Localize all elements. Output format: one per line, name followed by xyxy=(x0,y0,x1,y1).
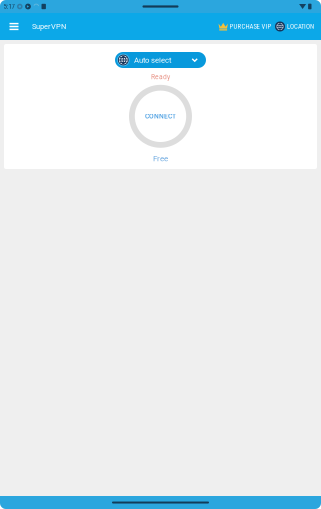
staticText: CONNECT xyxy=(145,112,176,120)
staticText: 5:17 xyxy=(3,2,14,10)
staticText: Free xyxy=(153,154,168,163)
staticText: PURCHASE VIP xyxy=(229,23,271,30)
button[interactable]: LOCATION xyxy=(273,13,321,40)
button[interactable]: PURCHASE VIP xyxy=(216,13,273,40)
staticText: Ready xyxy=(151,73,170,81)
staticText: LOCATION xyxy=(287,23,314,30)
button[interactable]: Auto select xyxy=(115,52,206,68)
staticText: SuperVPN xyxy=(32,22,66,31)
button[interactable]: Menu xyxy=(0,13,28,40)
staticText: Auto select xyxy=(134,55,172,65)
